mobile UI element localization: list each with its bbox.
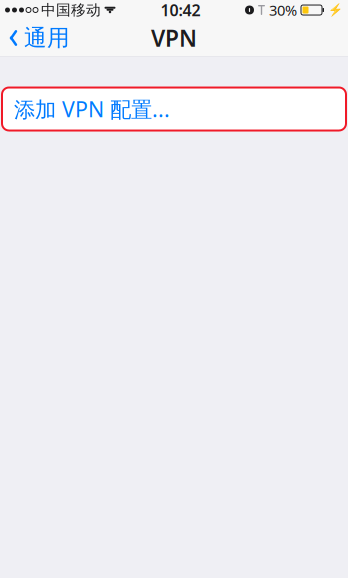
staticText: 30% — [269, 0, 297, 20]
staticText: 中国移动 — [41, 1, 101, 19]
staticText: VPN — [151, 23, 197, 53]
staticText: ⚡ — [328, 3, 343, 17]
staticText: 10:42 — [160, 0, 200, 21]
button[interactable]: 通用 — [0, 18, 80, 58]
button[interactable]: 添加 VPN 配置... — [2, 87, 346, 130]
staticText: 通用 — [24, 24, 70, 52]
staticText: 添加 VPN 配置... — [14, 95, 170, 123]
